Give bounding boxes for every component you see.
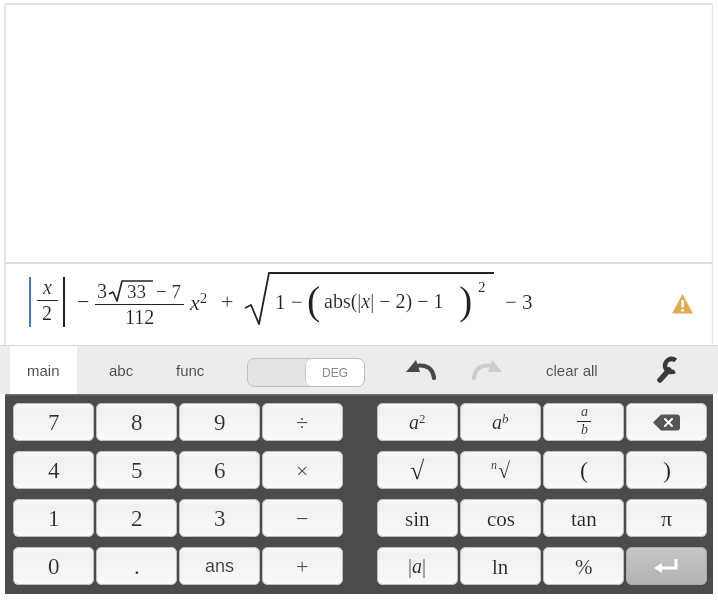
button[interactable]: √ <box>377 451 458 489</box>
button[interactable]: ) <box>626 451 707 489</box>
button[interactable] <box>626 547 707 585</box>
button[interactable]: π <box>626 499 707 537</box>
button[interactable]: |a| <box>377 547 458 585</box>
staticText: b <box>581 422 588 438</box>
staticText: tan <box>571 507 597 530</box>
button[interactable]: + <box>262 547 343 585</box>
staticText: % <box>575 555 593 578</box>
button[interactable]: DEG <box>247 358 365 387</box>
staticText: x <box>43 276 52 297</box>
staticText: main <box>27 362 60 379</box>
staticText: a2 <box>409 411 426 433</box>
button[interactable]: 6 <box>179 451 260 489</box>
button[interactable]: − <box>262 499 343 537</box>
button[interactable]: 2 <box>96 499 177 537</box>
button[interactable]: % <box>543 547 624 585</box>
staticText: 8 <box>131 410 143 435</box>
staticText: − 3 <box>505 290 533 313</box>
button[interactable]: 1 <box>13 499 94 537</box>
staticText: 2 <box>131 506 143 531</box>
staticText: ab <box>492 411 509 433</box>
staticText: ÷ <box>296 410 309 434</box>
staticText: √ <box>498 458 511 482</box>
staticText: ( <box>580 457 588 484</box>
button[interactable] <box>645 346 691 394</box>
button[interactable]: abc <box>93 346 150 394</box>
button[interactable]: ln <box>460 547 541 585</box>
staticText: ( <box>307 278 321 322</box>
staticText: 7 <box>48 410 60 435</box>
button[interactable]: func <box>158 346 222 394</box>
staticText: 33 <box>127 281 146 301</box>
staticText: 2 <box>478 279 486 296</box>
button[interactable]: . <box>96 547 177 585</box>
staticText: − <box>296 506 309 530</box>
staticText: 3 <box>97 280 107 302</box>
staticText: 9 <box>214 410 226 435</box>
button[interactable] <box>464 352 510 388</box>
staticText: . <box>134 554 140 579</box>
button[interactable]: 4 <box>13 451 94 489</box>
button[interactable]: × <box>262 451 343 489</box>
button[interactable]: cos <box>460 499 541 537</box>
staticText: 2 <box>42 302 52 324</box>
button[interactable]: ÷ <box>262 403 343 441</box>
staticText: − <box>77 289 90 313</box>
staticText: 0 <box>48 554 60 579</box>
staticText: a <box>581 404 588 420</box>
button[interactable]: a2 <box>377 403 458 441</box>
staticText: ) <box>663 457 671 484</box>
staticText: abc <box>109 362 134 379</box>
staticText: 1 <box>48 506 60 531</box>
button[interactable]: tan <box>543 499 624 537</box>
staticText: ln <box>492 555 509 578</box>
staticText: 3 <box>214 506 226 531</box>
button[interactable]: clear all <box>528 346 616 394</box>
button[interactable]: ( <box>543 451 624 489</box>
button[interactable] <box>626 403 707 441</box>
staticText: 5 <box>131 458 143 483</box>
staticText: 112 <box>125 306 155 328</box>
staticText: + <box>296 554 309 578</box>
staticText: 1 − <box>275 290 303 313</box>
button[interactable]: sin <box>377 499 458 537</box>
staticText: ) <box>459 278 473 322</box>
staticText: DEG <box>322 366 349 379</box>
button[interactable]: 0 <box>13 547 94 585</box>
staticText: + <box>221 289 234 313</box>
button[interactable]: n <box>460 451 541 489</box>
staticText: n <box>491 458 497 471</box>
staticText: sin <box>405 507 430 530</box>
staticText: π <box>661 506 673 530</box>
button[interactable]: 8 <box>96 403 177 441</box>
staticText: func <box>176 362 205 379</box>
button[interactable]: 9 <box>179 403 260 441</box>
staticText: 6 <box>214 458 226 483</box>
staticText: x2 <box>190 290 208 315</box>
staticText: × <box>296 458 309 482</box>
button[interactable]: 3 <box>179 499 260 537</box>
staticText: abs(|x| − 2) − 1 <box>324 290 444 312</box>
button[interactable]: main <box>10 346 77 394</box>
staticText: ans <box>205 556 235 576</box>
button[interactable]: ans <box>179 547 260 585</box>
staticText: clear all <box>546 362 598 379</box>
button[interactable]: 7 <box>13 403 94 441</box>
button[interactable]: 5 <box>96 451 177 489</box>
staticText: |a| <box>408 555 427 577</box>
staticText: − 7 <box>156 281 181 302</box>
staticText: cos <box>487 507 515 530</box>
button[interactable] <box>398 352 444 388</box>
button[interactable]: a <box>543 403 624 441</box>
staticText: √ <box>410 456 425 485</box>
button[interactable]: ab <box>460 403 541 441</box>
staticText: 4 <box>48 458 60 483</box>
